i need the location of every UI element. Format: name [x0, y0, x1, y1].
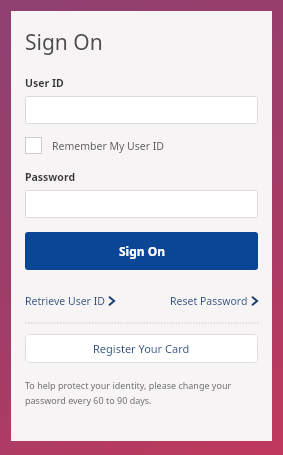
- button[interactable]: Register Your Card: [25, 334, 258, 363]
- staticText: Sign On: [119, 243, 165, 259]
- staticText: User ID: [25, 76, 64, 90]
- button[interactable]: [25, 96, 258, 124]
- button[interactable]: Remember My User ID: [25, 136, 164, 155]
- staticText: Register Your Card: [93, 341, 190, 356]
- button[interactable]: Reset Password: [170, 292, 258, 310]
- staticText: Remember My User ID: [52, 139, 164, 153]
- staticText: Sign On: [25, 28, 103, 57]
- button[interactable]: Retrieve User ID: [25, 292, 115, 310]
- staticText: Password: [25, 170, 76, 184]
- staticText: To help protect your identity, please ch…: [25, 379, 232, 391]
- staticText: Reset Password: [170, 294, 248, 308]
- button[interactable]: Sign On: [25, 232, 258, 270]
- staticText: password every 60 to 90 days.: [25, 394, 152, 406]
- button[interactable]: [25, 190, 258, 218]
- staticText: Retrieve User ID: [25, 294, 105, 308]
